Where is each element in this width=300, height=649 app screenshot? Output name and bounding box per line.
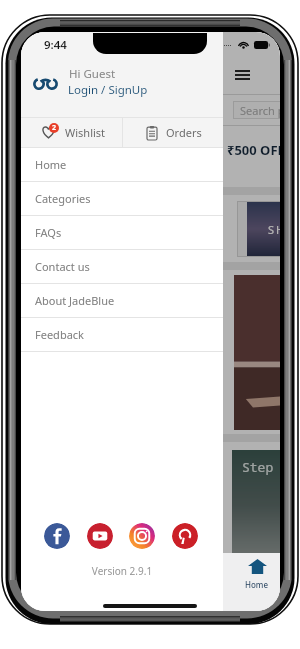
- button[interactable]: 2: [21, 118, 122, 147]
- button[interactable]: Menu: [228, 61, 256, 89]
- button[interactable]: About JadeBlue: [21, 284, 223, 317]
- staticText: About JadeBlue: [35, 293, 115, 308]
- button[interactable]: [234, 275, 280, 430]
- button[interactable]: Hi Guest: [21, 56, 223, 117]
- button[interactable]: Instagram: [129, 523, 155, 549]
- button[interactable]: FAQs: [21, 216, 223, 249]
- button[interactable]: Step out: [232, 450, 280, 561]
- staticText: Hi Guest: [69, 66, 116, 82]
- staticText: Login / SignUp: [68, 82, 148, 98]
- staticText: FAQs: [35, 225, 62, 240]
- staticText: Feedback: [35, 327, 84, 342]
- staticText: Home: [35, 157, 67, 172]
- button[interactable]: Pinterest: [172, 523, 198, 549]
- staticText: Categories: [35, 191, 91, 206]
- staticText: SHIRTS: [268, 222, 280, 237]
- staticText: Contact us: [35, 259, 90, 274]
- staticText: Orders: [166, 125, 202, 140]
- button[interactable]: Facebook: [44, 523, 70, 549]
- staticText: Home: [245, 579, 269, 590]
- staticText: Version 2.9.1: [21, 564, 223, 578]
- button[interactable]: Categories: [21, 182, 223, 215]
- button[interactable]: Feedback: [21, 318, 223, 351]
- button[interactable]: Home: [237, 559, 277, 590]
- button[interactable]: Home: [21, 148, 223, 181]
- staticText: Step out: [242, 458, 280, 476]
- staticText: 2: [52, 123, 57, 133]
- button[interactable]: YouTube: [87, 523, 113, 549]
- staticText: 9:44: [44, 37, 67, 53]
- button[interactable]: SHIRTS: [237, 201, 280, 257]
- staticText: Search products: [240, 103, 280, 118]
- staticText: Wishlist: [65, 125, 106, 140]
- staticText: ₹500 OFF* ON ₹2999: [227, 141, 280, 159]
- button[interactable]: Search products: [233, 101, 280, 119]
- button[interactable]: Orders: [123, 118, 223, 147]
- button[interactable]: Contact us: [21, 250, 223, 283]
